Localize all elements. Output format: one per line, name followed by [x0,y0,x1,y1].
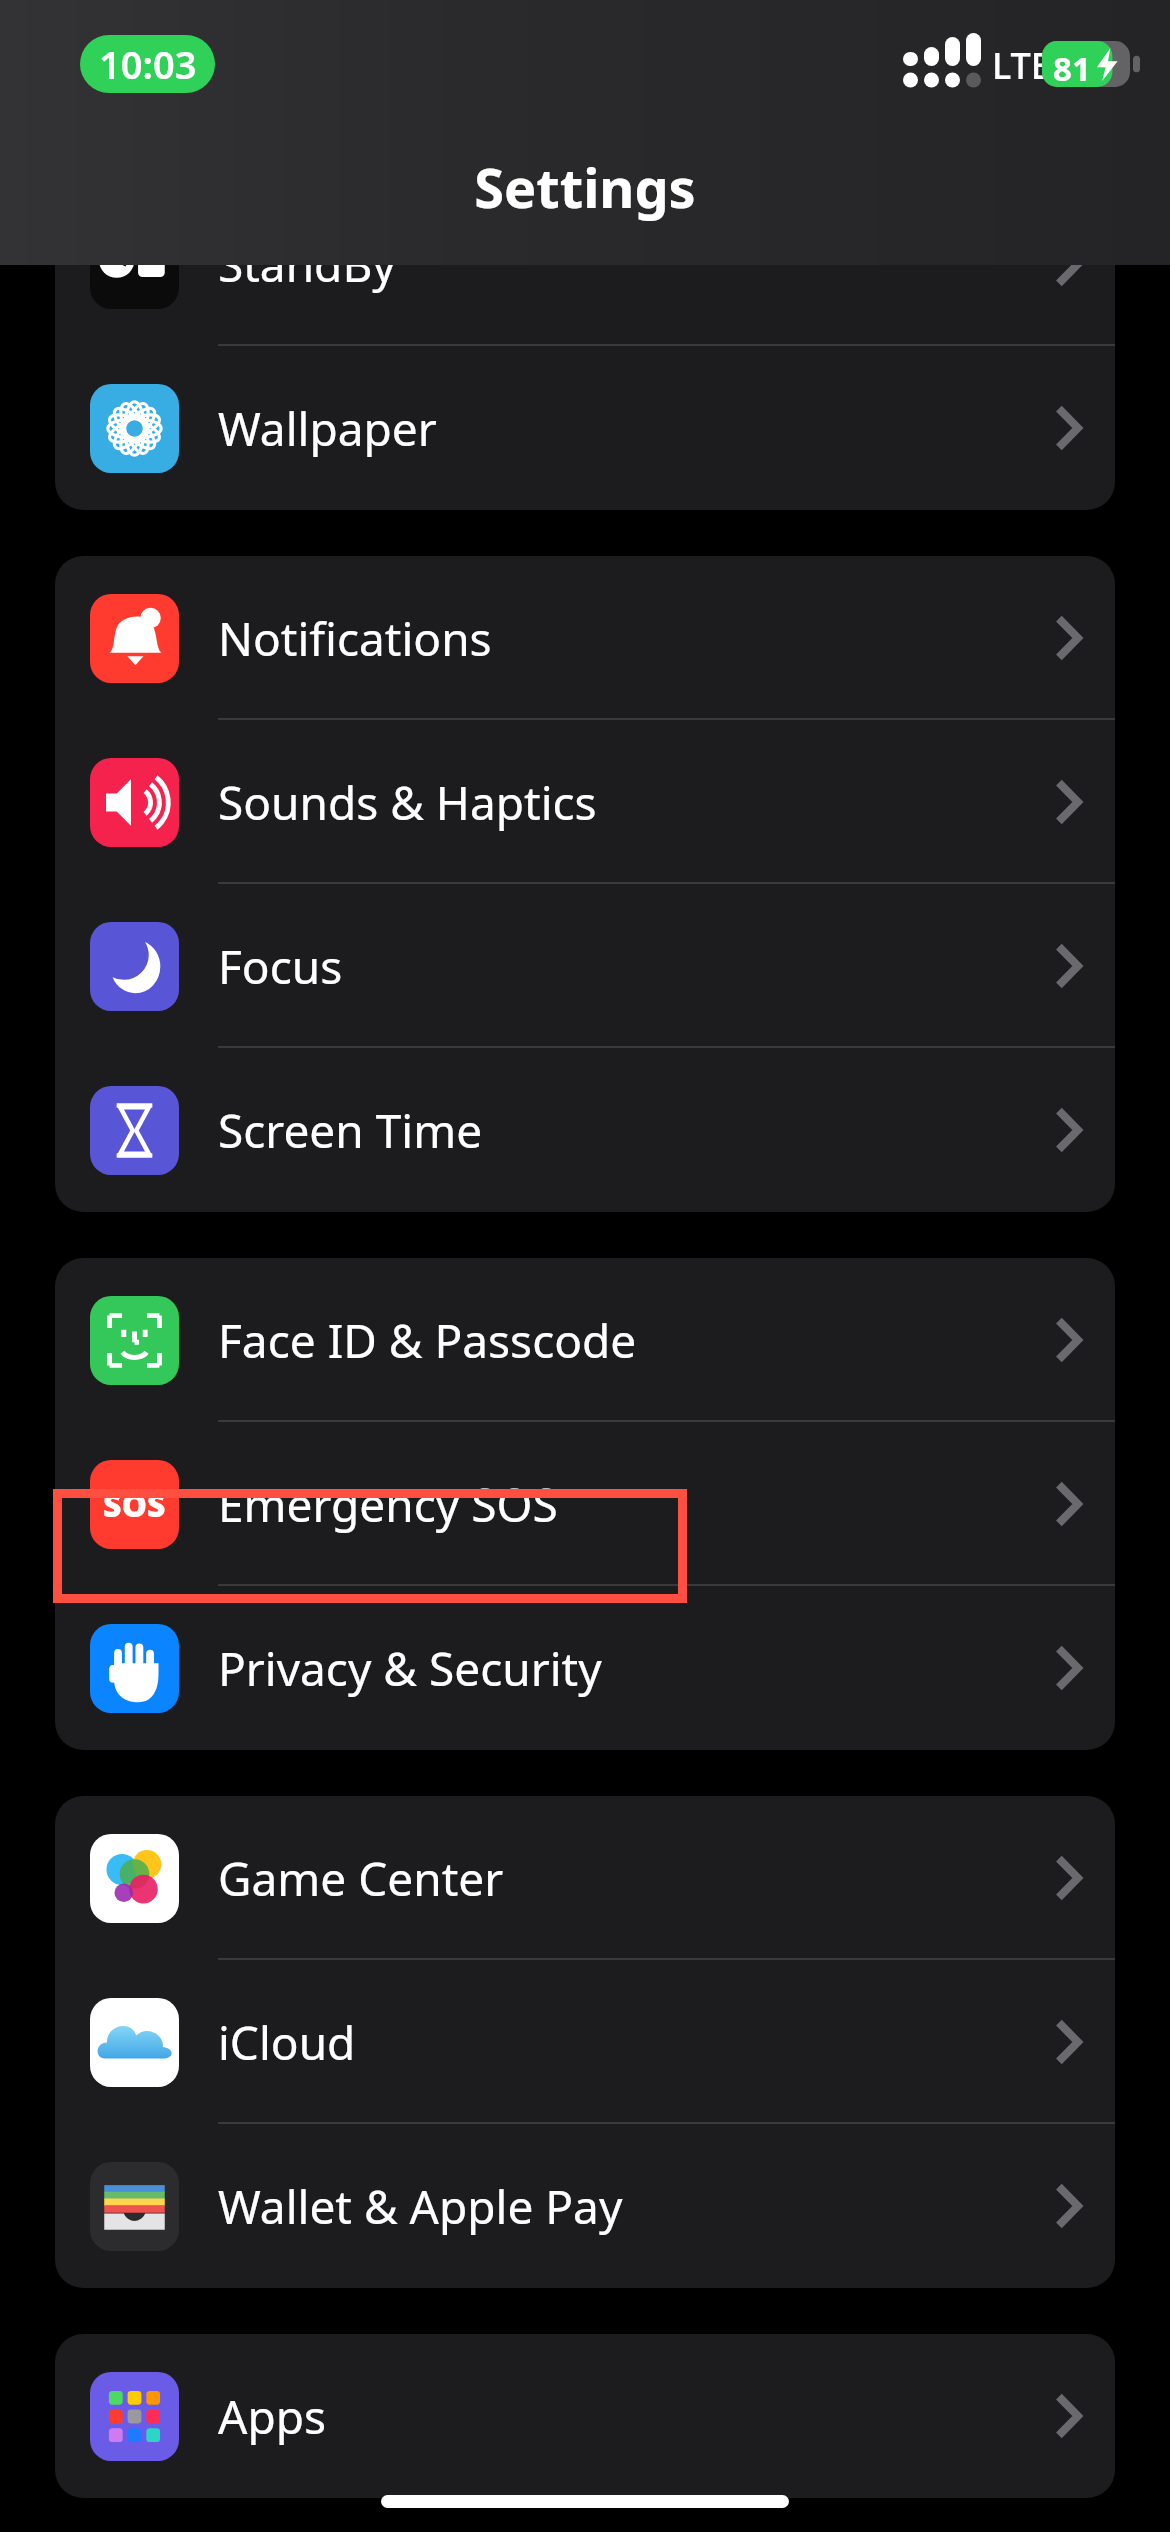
staticText: Settings [0,150,1170,224]
button[interactable]: Apps [55,2334,1115,2498]
button[interactable]: Screen Time [55,1048,1115,1212]
button[interactable]: Notifications [55,556,1115,720]
staticText: Wallet & Apple Pay [218,2175,623,2238]
staticText: LTE [992,41,1051,90]
button[interactable]: Game Center [55,1796,1115,1960]
staticText: Apps [218,2385,327,2448]
staticText: Wallpaper [218,397,437,460]
button[interactable]: iCloud [55,1960,1115,2124]
button[interactable]: Wallet & Apple Pay [55,2124,1115,2288]
button[interactable]: Focus [55,884,1115,1048]
button[interactable]: StandBy [55,182,1115,346]
staticText: Game Center [218,1847,504,1910]
staticText: iCloud [218,2011,356,2074]
staticText: Focus [218,935,343,998]
button[interactable]: Face ID & Passcode [55,1258,1115,1422]
button[interactable]: SOS [55,1422,1115,1586]
button[interactable]: Sounds & Haptics [55,720,1115,884]
staticText: Screen Time [218,1099,483,1162]
staticText: Emergency SOS [218,1473,558,1536]
staticText: StandBy [218,233,396,296]
staticText: Sounds & Haptics [218,771,597,834]
staticText: SOS [103,1483,166,1527]
button[interactable]: Wallpaper [55,346,1115,510]
button[interactable]: Privacy & Security [55,1586,1115,1750]
staticText: Notifications [218,607,492,670]
staticText: Privacy & Security [218,1637,602,1700]
staticText: 81 [1053,46,1091,91]
staticText: Face ID & Passcode [218,1309,637,1372]
staticText: 10:03 [99,38,197,90]
